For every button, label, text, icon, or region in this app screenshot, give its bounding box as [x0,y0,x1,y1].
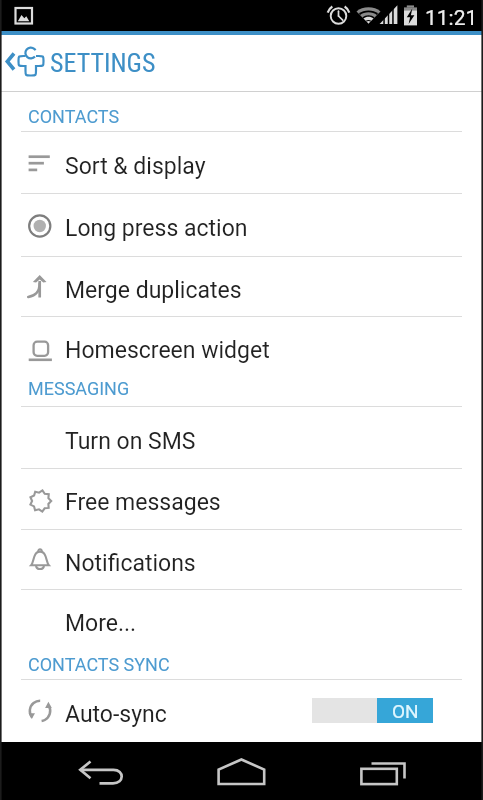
button[interactable]: More... [0,589,483,650]
staticText: MESSAGING [28,378,130,399]
button[interactable]: Auto-sync [0,679,483,741]
staticText: More... [65,610,137,637]
staticText: Sort & display [65,153,206,180]
button[interactable]: Turn on SMS [0,406,483,468]
staticText: Free messages [65,489,221,516]
button[interactable]: Home [212,742,272,800]
button[interactable]: Back [71,742,131,800]
button[interactable]: Recent apps [353,742,413,800]
staticText: Long press action [65,215,248,242]
button[interactable]: Long press action [0,193,483,256]
staticText: Turn on SMS [65,428,196,455]
button[interactable]: Sort & display [0,131,483,193]
button[interactable]: Notifications [0,529,483,589]
staticText: ON [392,700,419,722]
button[interactable]: Free messages [0,468,483,529]
staticText: SETTINGS [50,48,156,78]
button[interactable]: Homescreen widget [0,316,483,377]
staticText: Auto-sync [65,701,167,728]
button[interactable]: Auto-sync on [312,698,433,723]
staticText: CONTACTS [28,106,120,127]
staticText: Notifications [65,550,196,577]
button[interactable]: Merge duplicates [0,256,483,316]
staticText: 11:21 [425,6,478,31]
button[interactable]: Navigate up to Contacts [0,35,483,92]
staticText: Homescreen widget [65,337,270,364]
staticText: Merge duplicates [65,277,242,304]
staticText: CONTACTS SYNC [28,654,170,675]
